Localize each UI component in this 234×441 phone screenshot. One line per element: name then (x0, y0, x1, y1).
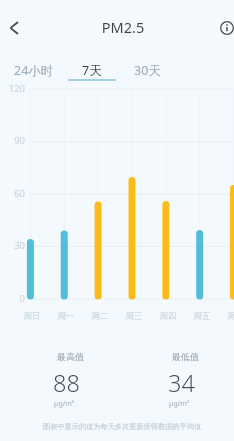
staticText: 60 (0, 187, 25, 200)
staticText: 最低值 (172, 351, 199, 362)
staticText: 120 (0, 82, 25, 95)
staticText: 30天 (134, 62, 161, 79)
button[interactable]: 7天 (62, 58, 122, 83)
staticText: 周日 (16, 311, 48, 322)
staticText: 最高值 (57, 351, 84, 362)
staticText: 周四 (152, 311, 184, 322)
staticText: 30 (0, 239, 25, 252)
staticText: 24小时 (14, 62, 54, 79)
staticText: 周三 (118, 311, 150, 322)
staticText: 34 (168, 367, 195, 399)
staticText: μg/m³ (54, 399, 75, 409)
staticText: PM2.5 (88, 17, 158, 37)
staticText: 周六 (220, 311, 234, 322)
staticText: 88 (53, 367, 80, 399)
staticText: 90 (0, 134, 25, 147)
staticText: 0 (0, 292, 25, 305)
staticText: 周一 (50, 311, 82, 322)
staticText: 7天 (82, 62, 102, 79)
button[interactable]: 24小时 (4, 58, 64, 83)
staticText: 周五 (186, 311, 218, 322)
staticText: 图表中显示的值为每天多次更新所得数据的平均值 (15, 422, 229, 431)
button[interactable]: 30天 (117, 58, 177, 83)
staticText: μg/m³ (169, 399, 190, 409)
button[interactable]: Back (0, 14, 28, 42)
button[interactable]: Information (214, 15, 234, 41)
staticText: 周二 (84, 311, 116, 322)
